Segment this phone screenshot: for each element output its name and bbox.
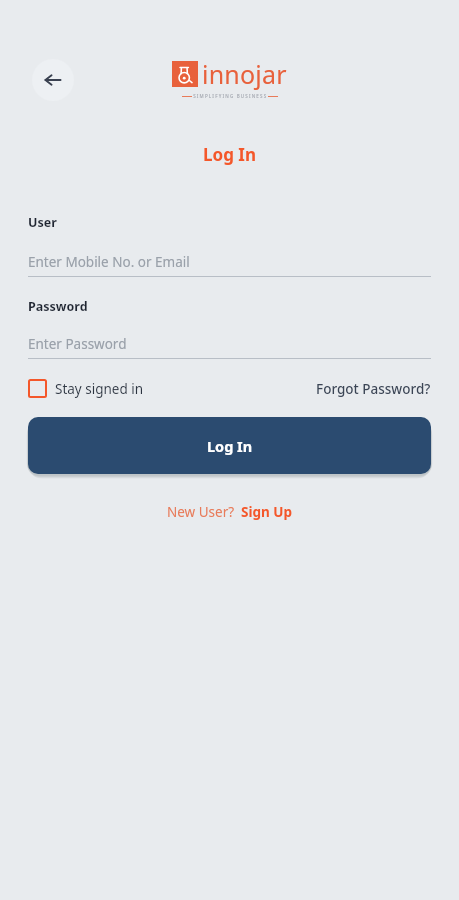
button[interactable]: Enter Password	[28, 335, 431, 353]
button[interactable]: Forgot Password?	[316, 380, 431, 398]
button[interactable]: Stay signed in	[28, 379, 144, 398]
button[interactable]: Log In	[28, 417, 431, 474]
staticText: Sign Up	[241, 503, 293, 521]
staticText: innojar	[202, 57, 287, 91]
staticText: User	[28, 214, 57, 231]
staticText: Forgot Password?	[316, 380, 431, 398]
staticText: Enter Mobile No. or Email	[28, 253, 190, 271]
button[interactable]: Back	[32, 59, 74, 101]
staticText: New User?	[167, 503, 235, 521]
staticText: Enter Password	[28, 335, 127, 353]
staticText: Password	[28, 298, 88, 315]
button[interactable]: Sign Up	[241, 503, 293, 521]
button[interactable]: Enter Mobile No. or Email	[28, 253, 431, 271]
staticText: Log In	[207, 436, 253, 456]
staticText: Log In	[0, 143, 459, 166]
staticText: Stay signed in	[55, 380, 144, 398]
staticText: S I M P L I F Y I N G B U S I N E S S	[192, 93, 268, 99]
